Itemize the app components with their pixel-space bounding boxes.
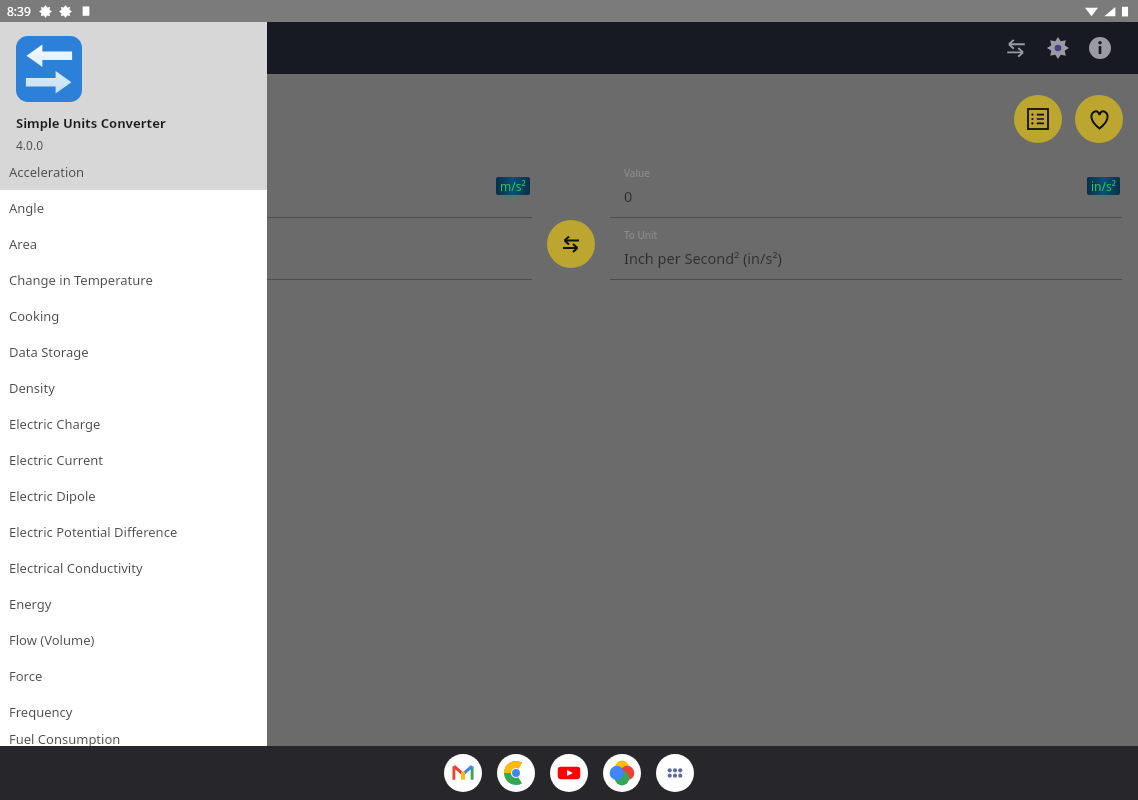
button[interactable]: Value — [16, 160, 532, 218]
button[interactable]: Electric Charge — [0, 406, 267, 442]
staticText: 0 — [624, 186, 633, 206]
staticText: Inch per Second² (in/s²) — [624, 248, 782, 268]
staticText: Metre per Second² (m/s²) — [30, 248, 200, 268]
staticText: Value — [30, 166, 56, 180]
staticText: Data Storage — [9, 343, 89, 361]
button[interactable]: Settings — [1038, 28, 1078, 68]
staticText: Change in Temperature — [9, 271, 153, 289]
staticText: Flow (Volume) — [9, 631, 95, 649]
button[interactable]: About — [1080, 28, 1120, 68]
staticText: Force — [9, 667, 43, 685]
staticText: Value — [624, 166, 650, 180]
button[interactable]: Area — [0, 226, 267, 262]
button[interactable]: Flow (Volume) — [0, 622, 267, 658]
button[interactable]: Angle — [0, 190, 267, 226]
staticText: Energy — [9, 595, 52, 613]
button[interactable]: Electric Current — [0, 442, 267, 478]
button[interactable]: Density — [0, 370, 267, 406]
button[interactable]: All apps — [656, 754, 694, 792]
button[interactable]: Fuel Consumption — [0, 730, 267, 746]
staticText: Electric Current — [9, 451, 103, 469]
staticText: Electric Potential Difference — [9, 523, 178, 541]
staticText: Electric Charge — [9, 415, 101, 433]
button[interactable]: Swap units — [996, 28, 1036, 68]
staticText: Area — [9, 235, 38, 253]
button[interactable]: Unit list — [1014, 95, 1062, 143]
staticText: 8:39 — [7, 3, 31, 19]
button[interactable]: Chrome — [497, 754, 535, 792]
button[interactable]: Photos — [603, 754, 641, 792]
staticText: 4.0.0 — [16, 137, 44, 153]
staticText: Cooking — [9, 307, 60, 325]
button[interactable]: Electric Potential Difference — [0, 514, 267, 550]
staticText: Density — [9, 379, 55, 397]
staticText: Fuel Consumption — [9, 730, 121, 746]
staticText: Simple Units Converter — [16, 114, 166, 132]
button[interactable]: Frequency — [0, 694, 267, 730]
staticText: Frequency — [9, 703, 73, 721]
staticText: Electric Dipole — [9, 487, 96, 505]
button[interactable]: Electric Dipole — [0, 478, 267, 514]
button[interactable]: YouTube — [550, 754, 588, 792]
staticText: Angle — [9, 199, 45, 217]
button[interactable]: Electrical Conductivity — [0, 550, 267, 586]
button[interactable]: Gmail — [444, 754, 482, 792]
staticText: To Unit — [624, 228, 658, 242]
button[interactable]: Energy — [0, 586, 267, 622]
button[interactable]: Acceleration — [0, 154, 267, 190]
staticText: m/s² — [500, 178, 526, 194]
button[interactable]: Cooking — [0, 298, 267, 334]
staticText: Electrical Conductivity — [9, 559, 143, 577]
button[interactable]: Favorites — [1075, 95, 1123, 143]
staticText: in/s² — [1091, 178, 1116, 194]
staticText: Acceleration — [9, 163, 85, 181]
button[interactable]: Value — [610, 160, 1122, 218]
button[interactable]: Force — [0, 658, 267, 694]
button[interactable]: To Unit — [610, 222, 1122, 280]
button[interactable]: Change in Temperature — [0, 262, 267, 298]
button[interactable]: From Unit — [16, 222, 532, 280]
button[interactable]: Swap — [547, 220, 595, 268]
staticText: 0 — [30, 186, 39, 206]
button[interactable]: Data Storage — [0, 334, 267, 370]
